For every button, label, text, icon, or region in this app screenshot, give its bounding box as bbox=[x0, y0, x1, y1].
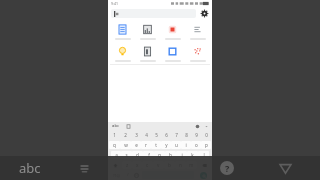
button[interactable]: r bbox=[141, 141, 151, 149]
staticText: o bbox=[195, 142, 198, 148]
button[interactable]: q bbox=[109, 141, 120, 149]
button[interactable] bbox=[135, 43, 160, 63]
button[interactable] bbox=[110, 21, 135, 41]
staticText: 2 bbox=[124, 132, 127, 138]
button[interactable]: j bbox=[176, 151, 187, 159]
button[interactable]: abc bbox=[0, 156, 108, 180]
staticText: e bbox=[135, 142, 138, 148]
staticText: 7 bbox=[175, 132, 178, 138]
button[interactable]: o bbox=[191, 141, 201, 149]
button[interactable]: Backspace bbox=[197, 161, 211, 169]
button[interactable]: Layers bbox=[79, 163, 90, 174]
button[interactable]: k bbox=[187, 151, 198, 159]
staticText: 3 bbox=[135, 132, 138, 138]
button[interactable] bbox=[160, 21, 185, 41]
button[interactable]: s bbox=[121, 151, 132, 159]
button[interactable]: t bbox=[151, 141, 161, 149]
button[interactable]: 0 bbox=[201, 131, 211, 139]
staticText: q bbox=[113, 142, 116, 148]
button[interactable]: More bbox=[204, 124, 209, 129]
button[interactable]: abc bbox=[111, 123, 121, 129]
staticText: 9:41 bbox=[111, 1, 118, 6]
button[interactable]: h bbox=[165, 151, 176, 159]
button[interactable]: Clipboard bbox=[126, 124, 131, 129]
button[interactable]: Search bbox=[195, 171, 211, 179]
staticText: 1 bbox=[113, 132, 116, 138]
button[interactable]: w bbox=[120, 141, 131, 149]
staticText: k bbox=[191, 152, 194, 158]
button[interactable]: 8 bbox=[181, 131, 191, 139]
button[interactable]: i bbox=[181, 141, 191, 149]
button[interactable]: Settings bbox=[200, 9, 209, 18]
button[interactable]: d bbox=[132, 151, 143, 159]
button[interactable]: g bbox=[154, 151, 165, 159]
button[interactable] bbox=[110, 43, 135, 63]
button[interactable]: u bbox=[171, 141, 181, 149]
button[interactable] bbox=[135, 21, 160, 41]
button[interactable]: 6 bbox=[161, 131, 171, 139]
staticText: 6 bbox=[165, 132, 168, 138]
button[interactable]: l bbox=[198, 151, 209, 159]
button[interactable]: 9 bbox=[191, 131, 201, 139]
staticText: i bbox=[185, 142, 187, 148]
button[interactable] bbox=[185, 21, 210, 41]
button[interactable]: e bbox=[131, 141, 141, 149]
button[interactable]: 1 bbox=[109, 131, 120, 139]
button[interactable]: y bbox=[161, 141, 171, 149]
staticText: 4 bbox=[145, 132, 148, 138]
button[interactable]: Help bbox=[214, 156, 240, 180]
button[interactable]: Back bbox=[272, 156, 298, 180]
staticText: abc bbox=[112, 123, 120, 129]
button[interactable] bbox=[160, 43, 185, 63]
button[interactable]: 2 bbox=[120, 131, 131, 139]
staticText: u bbox=[175, 142, 178, 148]
staticText: ? bbox=[225, 162, 230, 174]
staticText: 0 bbox=[205, 132, 208, 138]
staticText: j bbox=[181, 152, 183, 158]
staticText: w bbox=[124, 142, 128, 148]
staticText: g bbox=[158, 152, 161, 158]
staticText: d bbox=[136, 152, 139, 158]
staticText: s bbox=[125, 152, 128, 158]
staticText: l bbox=[203, 152, 205, 158]
staticText: 8 bbox=[185, 132, 188, 138]
button[interactable]: 5 bbox=[151, 131, 161, 139]
staticText: t bbox=[155, 142, 157, 148]
button[interactable]: p bbox=[201, 141, 211, 149]
button[interactable]: f bbox=[143, 151, 154, 159]
button[interactable]: a bbox=[111, 151, 121, 159]
staticText: abc bbox=[19, 159, 41, 177]
staticText: h bbox=[169, 152, 172, 158]
staticText: p bbox=[205, 142, 208, 148]
button[interactable]: 7 bbox=[171, 131, 181, 139]
staticText: a bbox=[115, 152, 118, 158]
button[interactable] bbox=[111, 9, 196, 18]
button[interactable]: 3 bbox=[131, 131, 141, 139]
staticText: 5 bbox=[155, 132, 158, 138]
button[interactable]: Settings bbox=[195, 124, 200, 129]
button[interactable]: 4 bbox=[141, 131, 151, 139]
button[interactable] bbox=[185, 43, 210, 63]
staticText: 9 bbox=[195, 132, 198, 138]
